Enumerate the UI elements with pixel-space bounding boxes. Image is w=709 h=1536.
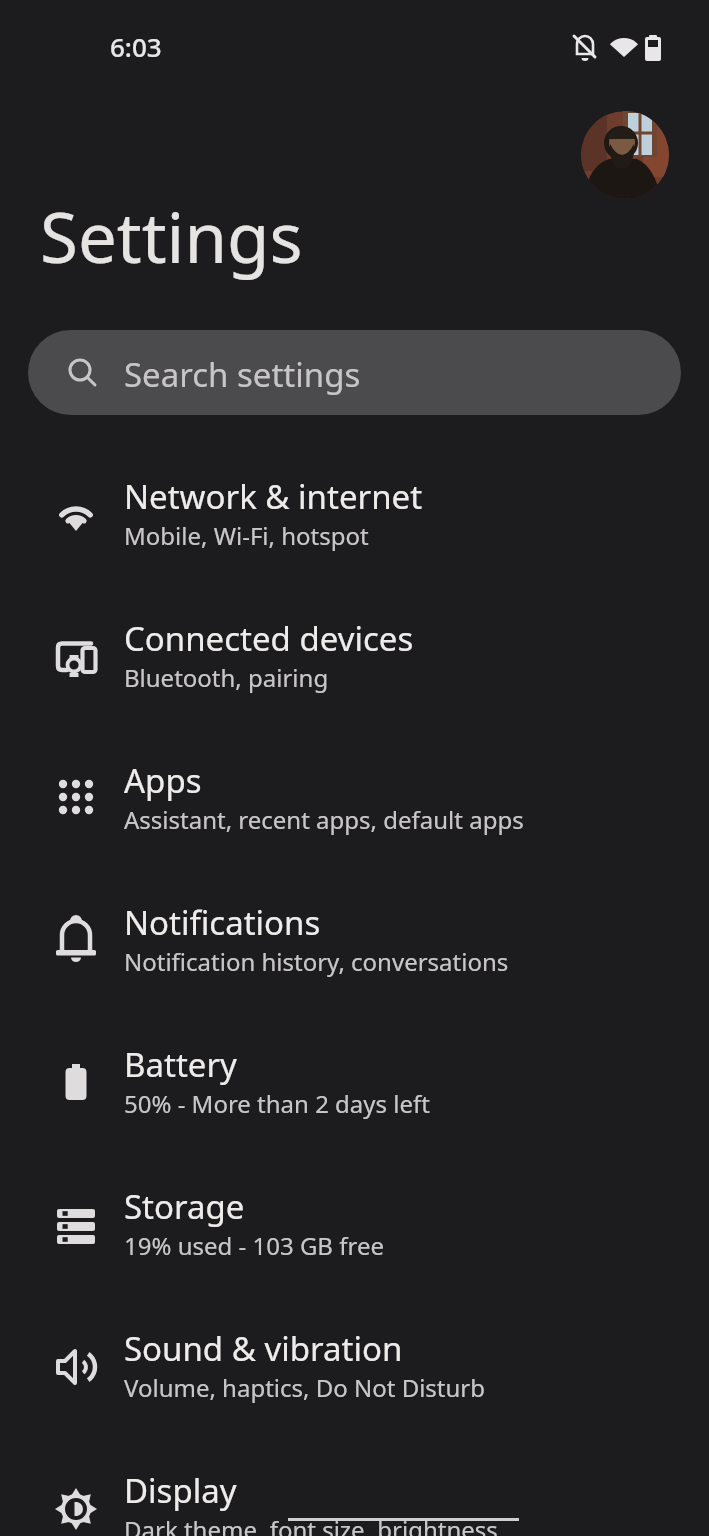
button[interactable]: Storage — [0, 1160, 709, 1302]
staticText: Sound & vibration — [124, 1326, 403, 1371]
staticText: 19% used - 103 GB free — [124, 1229, 384, 1262]
staticText: Dark theme, font size, brightness — [124, 1513, 498, 1536]
staticText: Mobile, Wi-Fi, hotspot — [124, 519, 369, 552]
staticText: Search settings — [124, 352, 361, 397]
staticText: Display — [124, 1468, 237, 1513]
staticText: Volume, haptics, Do Not Disturb — [124, 1371, 486, 1404]
staticText: Bluetooth, pairing — [124, 661, 329, 694]
staticText: Battery — [124, 1042, 237, 1087]
staticText: Apps — [124, 758, 202, 803]
staticText: Storage — [124, 1184, 245, 1229]
staticText: Assistant, recent apps, default apps — [124, 803, 524, 836]
staticText: Notification history, conversations — [124, 945, 509, 978]
button[interactable]: Connected devices — [0, 592, 709, 734]
button[interactable]: Sound & vibration — [0, 1302, 709, 1444]
button[interactable]: Network & internet — [0, 450, 709, 592]
button[interactable]: Apps — [0, 734, 709, 876]
button[interactable] — [581, 111, 669, 199]
button[interactable]: Notifications — [0, 876, 709, 1018]
button[interactable]: Search settings — [28, 330, 681, 415]
button[interactable]: Battery — [0, 1018, 709, 1160]
staticText: Settings — [40, 189, 303, 283]
staticText: 50% - More than 2 days left — [124, 1087, 430, 1120]
staticText: Connected devices — [124, 616, 414, 661]
staticText: Notifications — [124, 900, 321, 945]
staticText: Network & internet — [124, 474, 423, 519]
staticText: 6:03 — [110, 29, 162, 64]
button[interactable]: Display — [0, 1444, 709, 1536]
